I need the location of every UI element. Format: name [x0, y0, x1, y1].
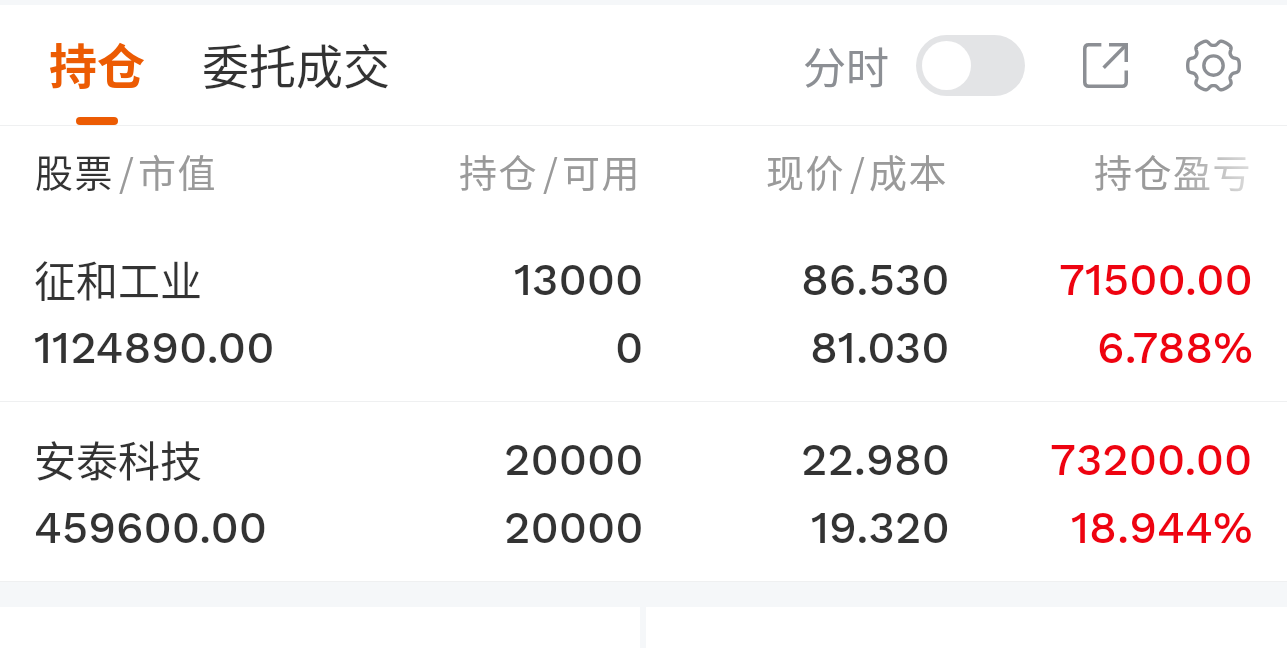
- staticText: 市值: [138, 143, 218, 198]
- staticText: 71500.00: [1059, 253, 1253, 306]
- button[interactable]: 安泰科技: [0, 402, 1287, 581]
- staticText: 持仓盈亏: [1094, 143, 1253, 198]
- button[interactable]: 分时: [789, 22, 1039, 108]
- staticText: 0: [615, 321, 644, 374]
- staticText: 19.320: [811, 501, 950, 554]
- button[interactable]: Open in new window: [1061, 13, 1149, 117]
- staticText: 安泰科技: [34, 428, 203, 489]
- staticText: 18.944%: [1071, 501, 1253, 554]
- staticText: 可用: [562, 143, 642, 198]
- staticText: 分时: [803, 34, 889, 96]
- staticText: 持仓: [459, 143, 539, 198]
- staticText: /: [119, 143, 134, 198]
- staticText: 22.980: [801, 433, 950, 486]
- staticText: 成本: [869, 143, 949, 198]
- staticText: 征和工业: [34, 248, 203, 309]
- staticText: 委托成交: [202, 29, 390, 97]
- button[interactable]: 委托成交: [181, 5, 411, 125]
- staticText: 持仓: [49, 28, 146, 98]
- staticText: 73200.00: [1050, 433, 1253, 486]
- staticText: 现价: [766, 143, 846, 198]
- button[interactable]: 征和工业: [0, 222, 1287, 401]
- staticText: 459600.00: [34, 501, 267, 554]
- staticText: /: [850, 143, 865, 198]
- staticText: 20000: [504, 433, 644, 486]
- staticText: 股票: [35, 143, 115, 198]
- staticText: 6.788%: [1097, 321, 1253, 374]
- staticText: 13000: [514, 253, 644, 306]
- staticText: 81.030: [810, 321, 950, 374]
- staticText: 20000: [504, 501, 644, 554]
- staticText: /: [543, 143, 558, 198]
- button[interactable]: 持仓: [29, 5, 165, 125]
- staticText: 1124890.00: [34, 321, 275, 374]
- button[interactable]: Settings: [1157, 13, 1269, 117]
- staticText: 86.530: [801, 253, 950, 306]
